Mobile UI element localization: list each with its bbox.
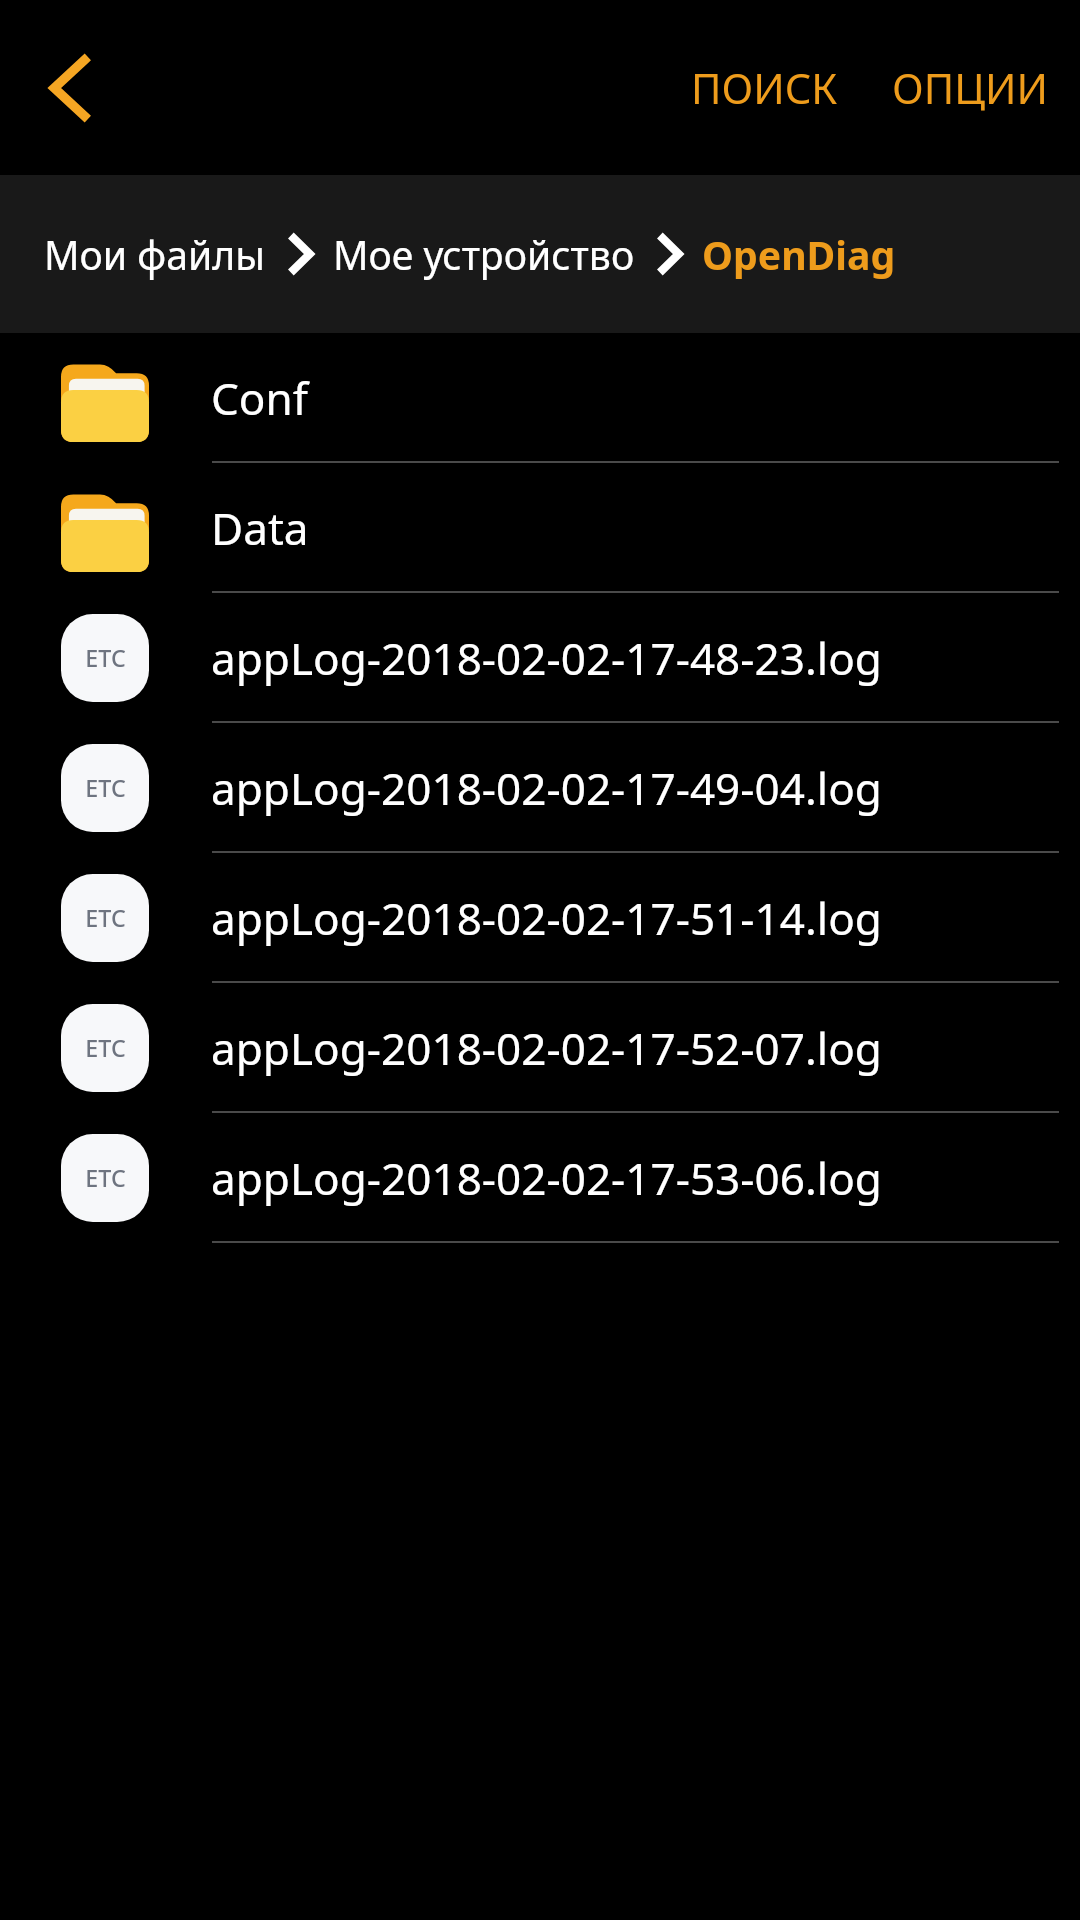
staticText: ETC [85, 902, 126, 934]
staticText: ПОИСК [691, 59, 838, 116]
staticText: Data [211, 498, 309, 558]
button[interactable]: ОПЦИИ [875, 42, 1065, 133]
staticText: ETC [85, 1032, 126, 1064]
staticText: ETC [85, 1162, 126, 1194]
button[interactable]: OpenDiag [702, 216, 896, 293]
staticText: Мои файлы [44, 228, 266, 281]
button[interactable]: ETC [0, 723, 1080, 853]
staticText: ETC [85, 772, 126, 804]
staticText: appLog-2018-02-02-17-49-04.log [211, 758, 882, 818]
button[interactable]: ETC [0, 853, 1080, 983]
staticText: OpenDiag [702, 228, 896, 281]
staticText: ETC [85, 642, 126, 674]
staticText: Conf [211, 368, 308, 428]
button[interactable]: Data [0, 463, 1080, 593]
button[interactable]: Back [22, 39, 120, 137]
staticText: appLog-2018-02-02-17-52-07.log [211, 1018, 882, 1078]
staticText: appLog-2018-02-02-17-48-23.log [211, 628, 882, 688]
button[interactable]: ETC [0, 1113, 1080, 1243]
staticText: ОПЦИИ [892, 59, 1048, 116]
button[interactable]: ПОИСК [674, 42, 855, 133]
staticText: Мое устройство [333, 228, 635, 281]
button[interactable]: ETC [0, 983, 1080, 1113]
staticText: appLog-2018-02-02-17-51-14.log [211, 888, 882, 948]
button[interactable]: ETC [0, 593, 1080, 723]
staticText: appLog-2018-02-02-17-53-06.log [211, 1148, 882, 1208]
button[interactable]: Мои файлы [44, 216, 266, 293]
button[interactable]: Conf [0, 333, 1080, 463]
button[interactable]: Мое устройство [333, 216, 635, 293]
